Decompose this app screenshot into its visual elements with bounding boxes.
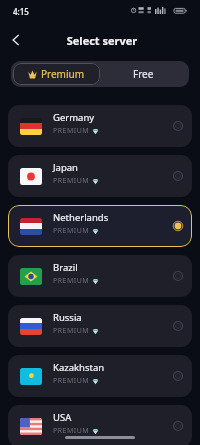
button[interactable]: Premium — [13, 63, 100, 85]
staticText: Japan — [53, 161, 78, 174]
button[interactable]: Free — [100, 63, 187, 85]
staticText: Netherlands — [53, 211, 109, 224]
staticText: USA — [53, 411, 72, 424]
staticText: PREMIUM — [53, 226, 90, 236]
staticText: PREMIUM — [53, 126, 90, 136]
staticText: Russia — [53, 311, 82, 324]
staticText: Brazil — [53, 261, 78, 274]
button[interactable]: Back — [4, 28, 28, 52]
staticText: Germany — [53, 111, 95, 124]
staticText: PREMIUM — [53, 376, 90, 386]
button[interactable]: Japan — [8, 155, 192, 197]
staticText: Kazakhstan — [53, 361, 105, 374]
button[interactable]: Kazakhstan — [8, 355, 192, 397]
staticText: PREMIUM — [53, 276, 90, 286]
staticText: PREMIUM — [53, 326, 90, 336]
button[interactable]: Germany — [8, 105, 192, 147]
button[interactable]: Russia — [8, 305, 192, 347]
staticText: Premium — [41, 67, 85, 81]
staticText: Select server — [2, 33, 200, 48]
staticText: PREMIUM — [53, 426, 90, 436]
button[interactable]: USA — [8, 405, 192, 445]
staticText: Free — [133, 67, 154, 81]
staticText: 4:15 — [13, 6, 29, 17]
button[interactable]: Netherlands — [8, 205, 192, 247]
staticText: PREMIUM — [53, 176, 90, 186]
button[interactable]: Brazil — [8, 255, 192, 297]
